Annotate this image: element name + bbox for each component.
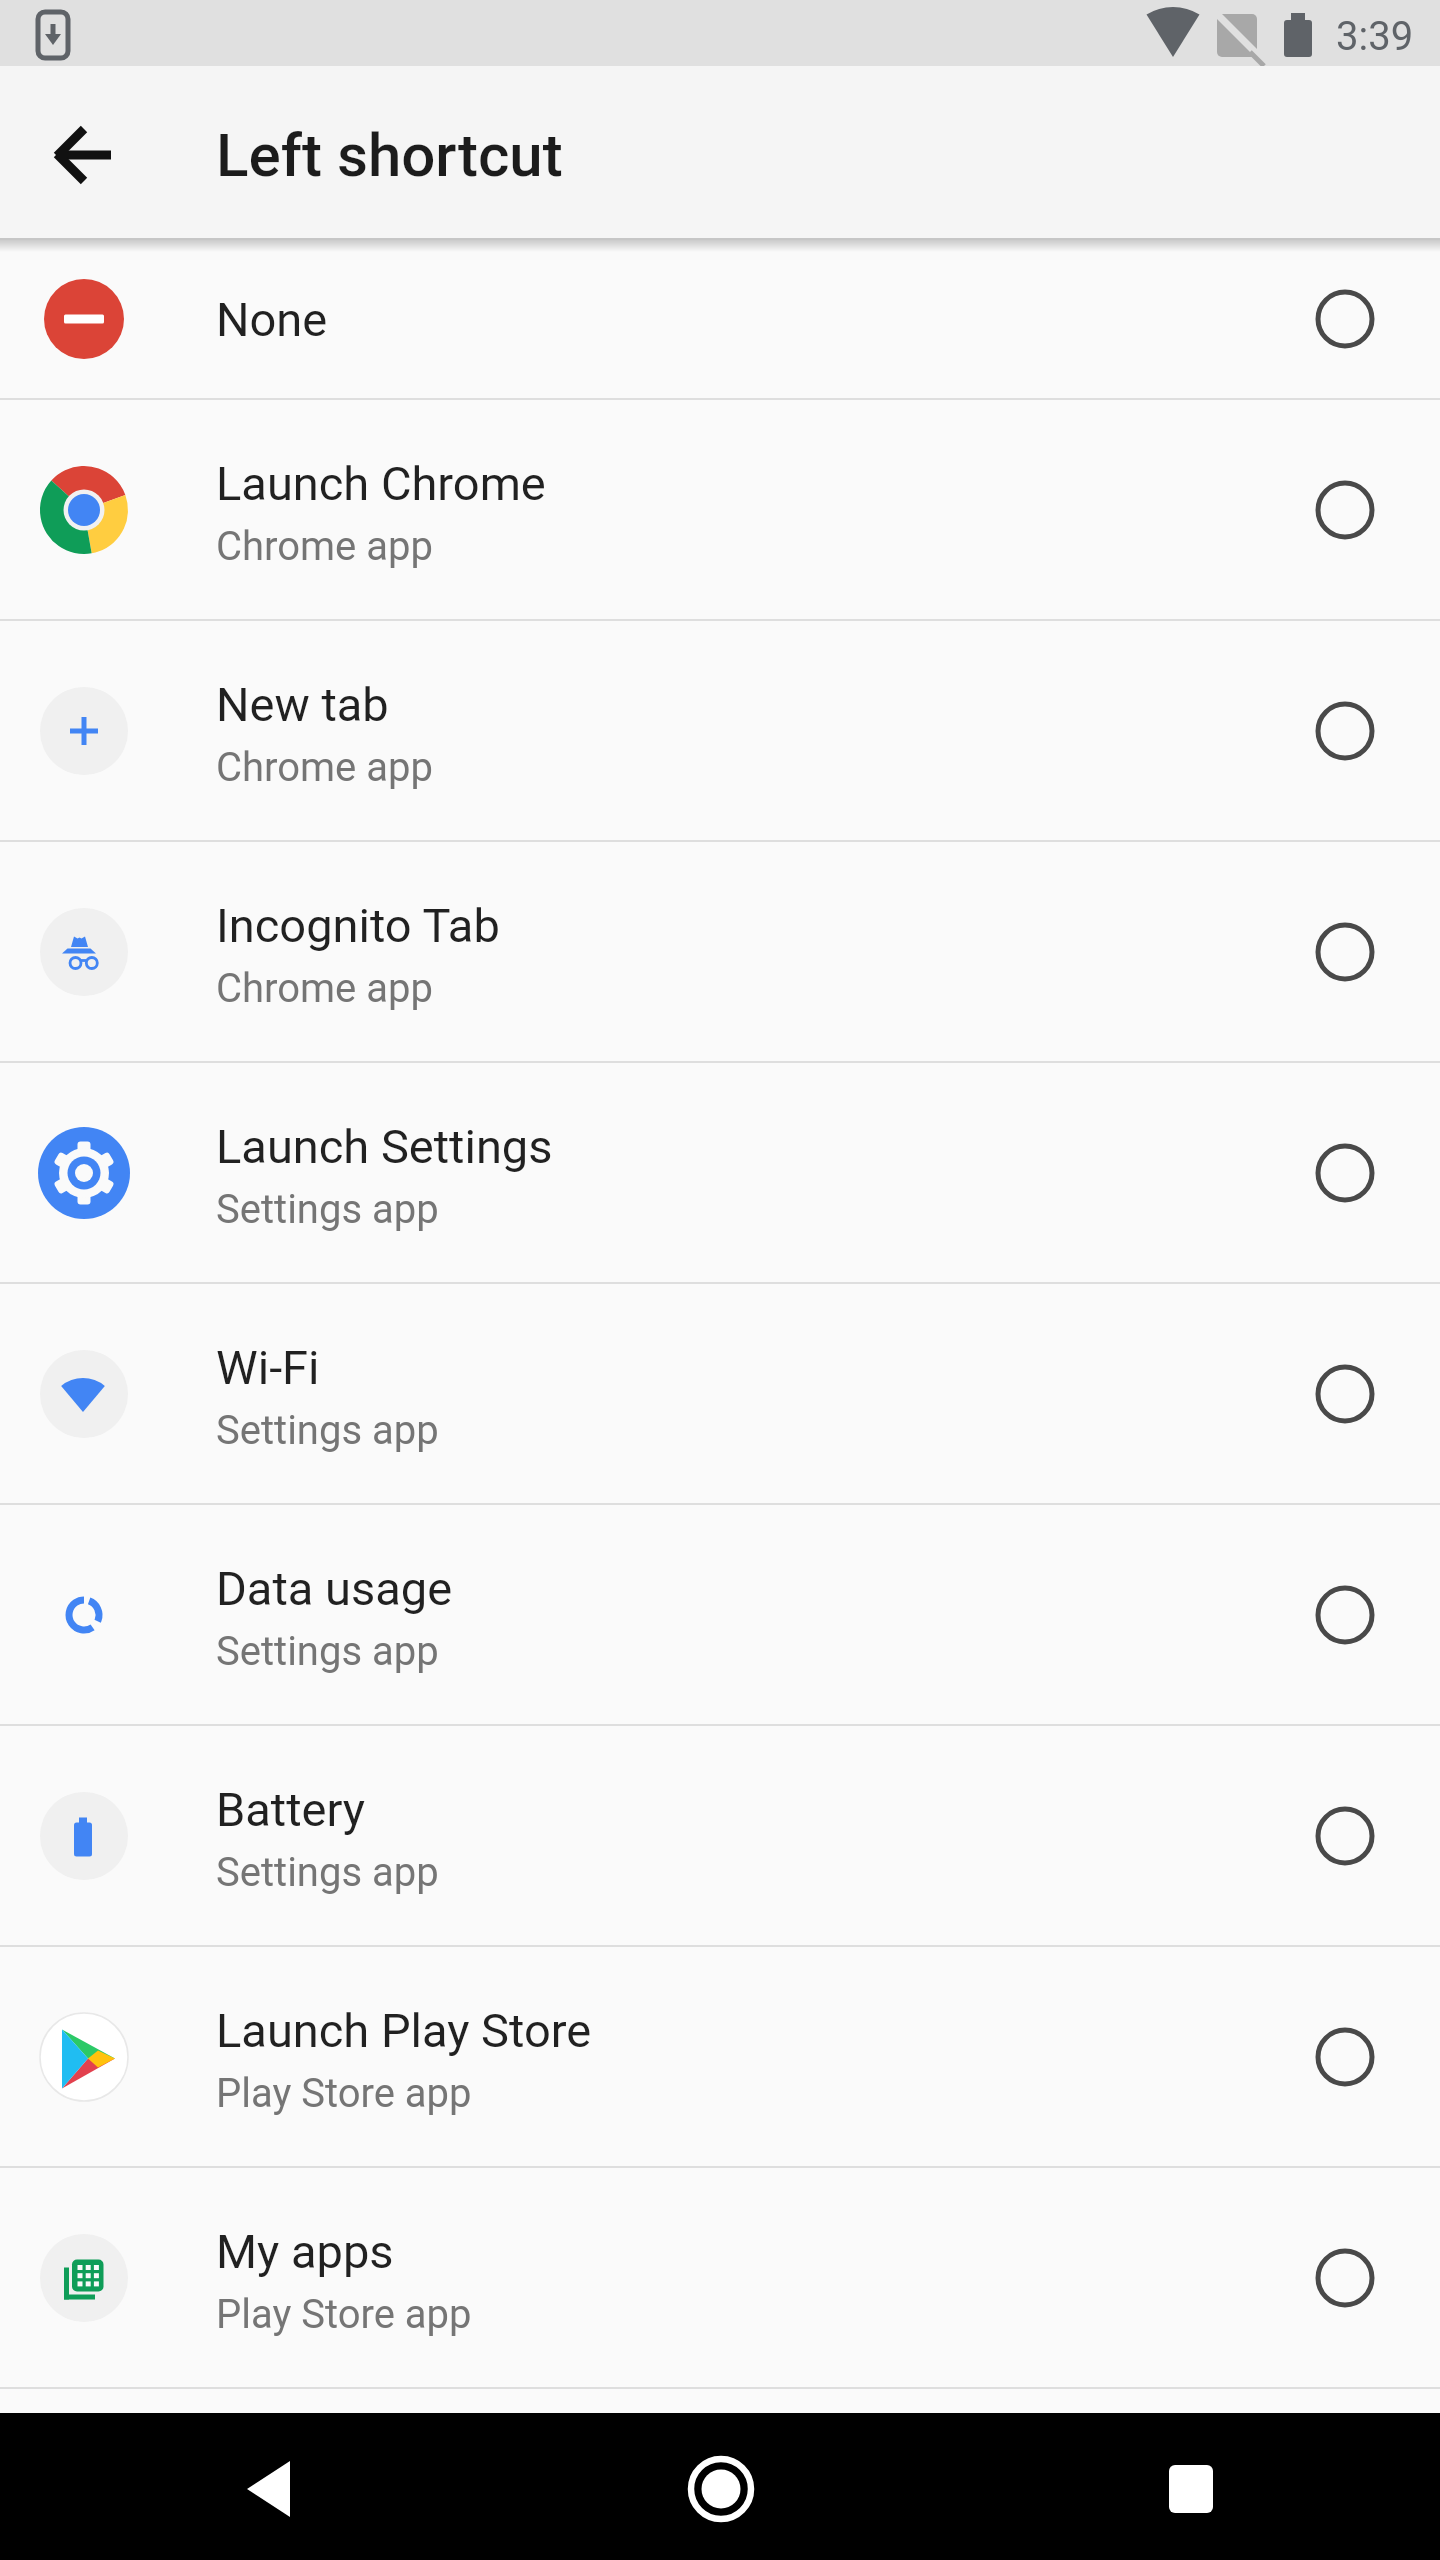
staticText: Chrome app (216, 744, 433, 791)
staticText: Incognito Tab (216, 898, 500, 953)
button[interactable]: Launch Settings (0, 1063, 1440, 1282)
staticText: Launch Settings (216, 1119, 553, 1174)
staticText: Wi-Fi (216, 1340, 320, 1395)
button[interactable]: Wi-Fi (0, 1284, 1440, 1503)
staticText: Left shortcut (216, 120, 563, 190)
button[interactable]: Battery (0, 1726, 1440, 1945)
staticText: 3:39 (1336, 13, 1414, 60)
staticText: None (216, 292, 328, 347)
button[interactable]: Launch Chrome (0, 400, 1440, 619)
staticText: Play Store app (216, 2070, 472, 2117)
button[interactable]: None (0, 240, 1440, 398)
staticText: Launch Play Store (216, 2003, 592, 2058)
button[interactable]: New tab (0, 621, 1440, 840)
staticText: Chrome app (216, 965, 433, 1012)
staticText: Data usage (216, 1561, 453, 1616)
staticText: Launch Chrome (216, 456, 546, 511)
button[interactable]: Data usage (0, 1505, 1440, 1724)
staticText: Battery (216, 1782, 366, 1837)
button[interactable] (1155, 2453, 1227, 2525)
button[interactable] (685, 2453, 757, 2525)
staticText: Settings app (216, 1186, 439, 1233)
staticText: Settings app (216, 1628, 439, 1675)
button[interactable]: Incognito Tab (0, 842, 1440, 1061)
staticText: My apps (216, 2224, 394, 2279)
staticText: Settings app (216, 1849, 439, 1896)
button[interactable] (232, 2453, 304, 2525)
button[interactable]: Launch Play Store (0, 1947, 1440, 2166)
staticText: Play Store app (216, 2291, 472, 2338)
button[interactable]: My apps (0, 2168, 1440, 2387)
staticText: Chrome app (216, 523, 433, 570)
staticText: New tab (216, 677, 389, 732)
staticText: Settings app (216, 1407, 439, 1454)
button[interactable] (55, 125, 115, 185)
